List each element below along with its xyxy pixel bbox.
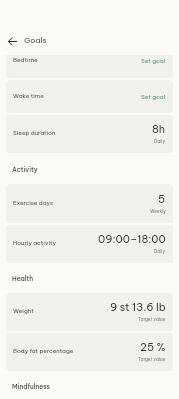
staticText: Sleep duration bbox=[13, 129, 152, 137]
staticText: Exercise days bbox=[13, 199, 150, 207]
button[interactable]: Hourly activity bbox=[6, 225, 173, 263]
button[interactable]: Exercise days bbox=[6, 184, 173, 223]
button[interactable]: Weight bbox=[6, 293, 173, 331]
staticText: Weight bbox=[13, 307, 110, 315]
staticText: Set goal bbox=[141, 93, 166, 101]
staticText: 9 st 13.6 lb bbox=[110, 300, 166, 314]
staticText: 25 % bbox=[140, 340, 166, 354]
staticText: Set goal bbox=[141, 57, 166, 65]
staticText: Mindfulness bbox=[12, 382, 50, 390]
button[interactable]: Wake time bbox=[6, 80, 173, 113]
staticText: 5 bbox=[158, 192, 166, 206]
button[interactable]: Back bbox=[3, 32, 21, 50]
staticText: Activity bbox=[12, 165, 38, 173]
staticText: Wake time bbox=[13, 92, 141, 100]
staticText: Health bbox=[12, 274, 34, 282]
staticText: Weekly bbox=[150, 208, 166, 214]
button[interactable]: Body fat percentage bbox=[6, 333, 173, 371]
staticText: 09:00–18:00 bbox=[98, 232, 166, 246]
staticText: Target value bbox=[138, 356, 166, 362]
staticText: Goals bbox=[24, 35, 47, 45]
staticText: Daily bbox=[154, 138, 166, 144]
staticText: Hourly activity bbox=[13, 239, 98, 247]
staticText: Body fat percentage bbox=[13, 347, 138, 355]
staticText: Target value bbox=[138, 316, 166, 322]
staticText: 8h bbox=[152, 122, 166, 136]
staticText: Bedtime bbox=[13, 56, 141, 64]
staticText: Daily bbox=[154, 248, 166, 254]
button[interactable]: Sleep duration bbox=[6, 115, 173, 153]
button[interactable]: Bedtime bbox=[6, 55, 173, 78]
